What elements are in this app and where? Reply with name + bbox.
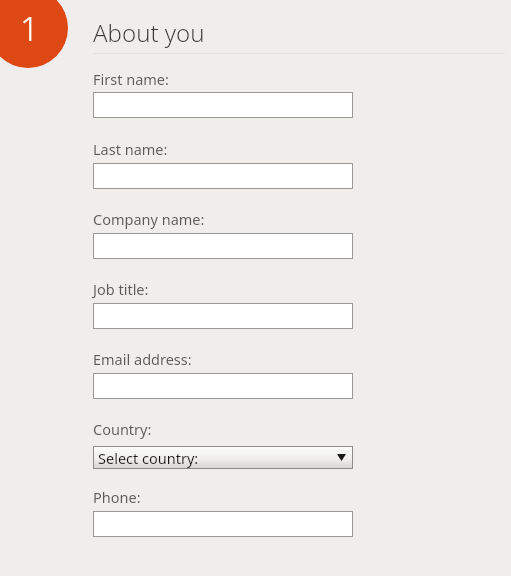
button[interactable]: Select country:	[93, 446, 353, 469]
button[interactable]: Last name	[93, 163, 353, 189]
staticText: Country:	[93, 419, 152, 439]
staticText: Select country:	[98, 448, 199, 468]
staticText: Phone:	[93, 487, 141, 507]
staticText: Company name:	[93, 209, 205, 229]
staticText: Job title:	[93, 279, 149, 299]
button[interactable]: Company name	[93, 233, 353, 259]
button[interactable]: Email address	[93, 373, 353, 399]
button[interactable]: Step 1	[0, 0, 68, 68]
staticText: Email address:	[93, 349, 192, 369]
button[interactable]: First name	[93, 92, 353, 118]
button[interactable]: Job title	[93, 303, 353, 329]
staticText: First name:	[93, 69, 169, 89]
staticText: 1	[20, 6, 39, 51]
button[interactable]: Phone	[93, 511, 353, 537]
staticText: About you	[93, 16, 205, 49]
staticText: Last name:	[93, 139, 168, 159]
